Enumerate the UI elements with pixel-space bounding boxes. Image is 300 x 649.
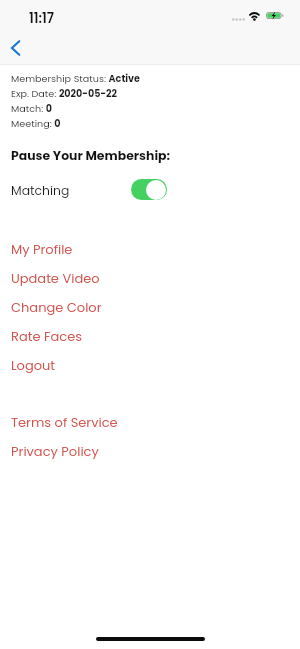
button[interactable]: Change Color [0,295,300,319]
button[interactable]: Back [0,33,30,63]
staticText: Exp. Date: 2020-05-22 [11,87,117,100]
button[interactable]: Terms of Service [0,410,300,434]
button[interactable]: Privacy Policy [0,439,300,463]
staticText: 11:17 [29,9,55,27]
staticText: Matching [11,182,70,199]
button[interactable]: Update Video [0,266,300,290]
staticText: Pause Your Membership: [11,147,171,164]
button[interactable]: My Profile [0,237,300,261]
button[interactable]: Logout [0,353,300,377]
staticText: Privacy Policy [11,442,99,460]
staticText: Match: 0 [11,102,53,115]
staticText: Update Video [11,269,100,287]
staticText: Rate Faces [11,327,83,345]
button[interactable]: Matching toggle [131,179,167,200]
staticText: Terms of Service [11,413,118,431]
staticText: Meeting: 0 [11,117,61,130]
button[interactable]: Rate Faces [0,324,300,348]
staticText: Logout [11,356,56,374]
staticText: Membership Status: Active [11,72,141,85]
staticText: Change Color [11,298,102,316]
staticText: My Profile [11,240,73,258]
